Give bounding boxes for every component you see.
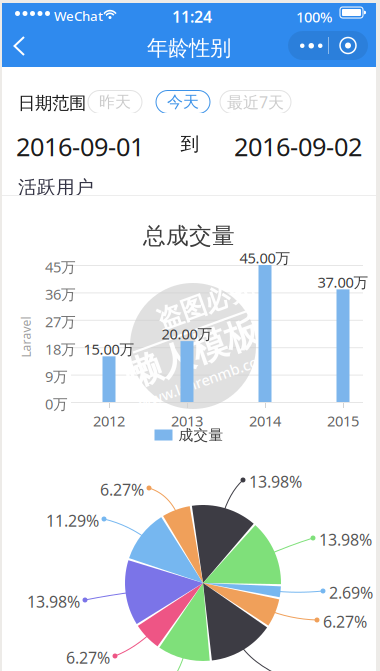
staticText: 9万 (45, 367, 68, 386)
staticText: 盗图必究 (155, 288, 255, 319)
staticText: 37.00万 (317, 272, 368, 292)
staticText: 2016-09-02 (234, 130, 362, 163)
staticText: Laravel (5, 329, 46, 345)
staticText: www.lanrenmb.com (135, 370, 275, 390)
button[interactable]: 最近7天 (220, 90, 291, 113)
staticText: 15.00万 (83, 339, 134, 359)
staticText: 总成交量 (143, 222, 235, 250)
staticText: 年龄性别 (147, 35, 231, 61)
staticText: 6.27% (66, 647, 110, 668)
staticText: 日期范围 (18, 92, 86, 114)
staticText: 昨天 (99, 92, 131, 112)
staticText: 0万 (45, 394, 68, 413)
staticText: 13.98% (27, 591, 80, 612)
staticText: 13.98% (249, 471, 302, 492)
staticText: 18万 (45, 339, 76, 359)
staticText: 2015 (327, 411, 359, 430)
button[interactable]: 昨天 (88, 90, 142, 113)
button[interactable]: 今天 (156, 90, 210, 113)
staticText: 45.00万 (239, 248, 290, 267)
staticText: 13.98% (319, 529, 372, 550)
staticText: 最近7天 (227, 91, 284, 113)
staticText: 懒人模板 (123, 332, 263, 374)
staticText: 100% (296, 7, 332, 26)
staticText: 45万 (45, 257, 76, 276)
staticText: 27万 (45, 312, 76, 331)
staticText: WeChat (54, 7, 103, 25)
staticText: 今天 (167, 92, 199, 112)
staticText: 6.27% (323, 611, 367, 632)
staticText: 20.00万 (161, 324, 212, 344)
button[interactable]: More (288, 31, 368, 60)
staticText: 2012 (93, 411, 125, 430)
staticText: 成交量 (178, 426, 223, 444)
staticText: 活跃用户 (18, 176, 94, 199)
staticText: 11.29% (46, 510, 99, 531)
button[interactable]: Back (2, 26, 42, 66)
staticText: 2016-09-01 (16, 130, 144, 163)
staticText: 6.27% (100, 479, 144, 500)
staticText: 11:24 (172, 6, 212, 27)
staticText: 36万 (45, 284, 76, 304)
staticText: 2.69% (329, 582, 373, 603)
staticText: 到 (180, 133, 199, 156)
staticText: 2013 (171, 411, 203, 430)
staticText: 2014 (249, 411, 281, 430)
